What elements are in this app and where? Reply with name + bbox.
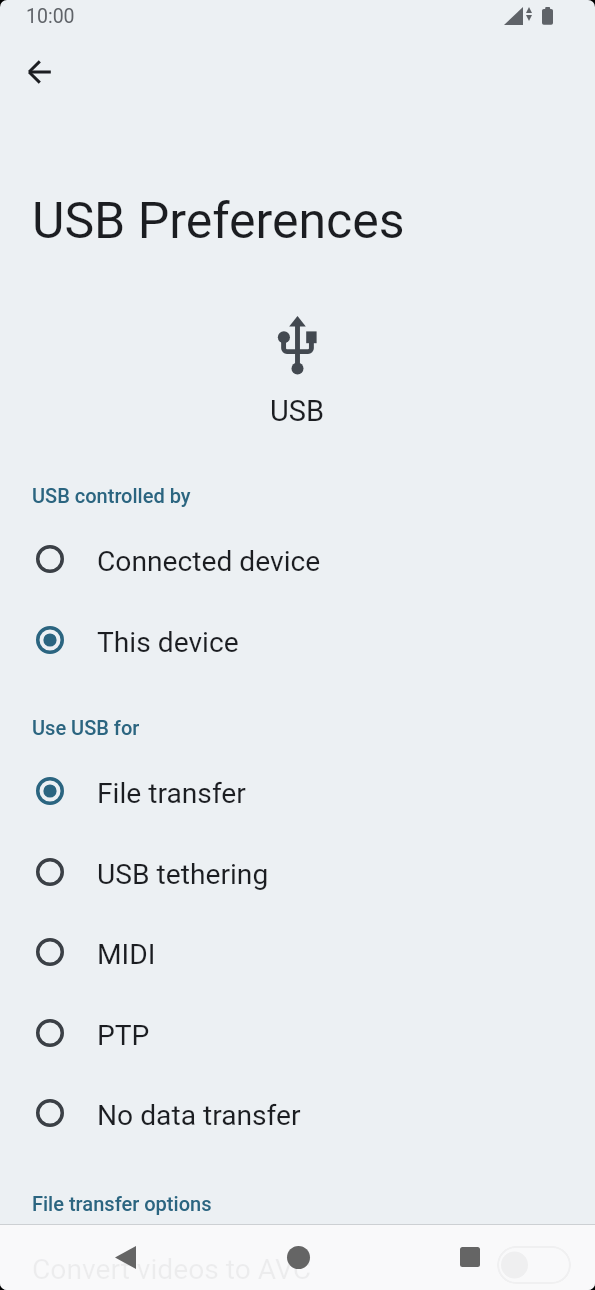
staticText: USB <box>270 394 325 428</box>
staticText: This device <box>97 626 239 659</box>
button[interactable]: Connected device <box>0 519 595 599</box>
button[interactable]: Back <box>11 44 67 100</box>
staticText: USB controlled by <box>32 484 191 507</box>
button[interactable]: PTP <box>0 993 595 1073</box>
button[interactable]: Convert videos to AVC <box>497 1246 571 1284</box>
staticText: USB Preferences <box>32 192 405 251</box>
button[interactable]: This device <box>0 600 595 680</box>
staticText: 10:00 <box>26 5 75 28</box>
button[interactable]: USB tethering <box>0 832 595 912</box>
button[interactable]: Home <box>270 1230 326 1286</box>
staticText: File transfer options <box>32 1192 212 1215</box>
button[interactable]: MIDI <box>0 912 595 992</box>
button[interactable]: Back <box>97 1230 153 1286</box>
button[interactable]: Recent apps <box>442 1230 498 1286</box>
button[interactable]: Convert videos to AVC <box>0 1239 595 1290</box>
staticText: Use USB for <box>32 716 140 739</box>
staticText: File transfer <box>97 777 246 810</box>
staticText: No data transfer <box>97 1099 301 1132</box>
staticText: Convert videos to AVC <box>32 1253 573 1286</box>
staticText: MIDI <box>97 938 156 971</box>
button[interactable]: No data transfer <box>0 1073 595 1153</box>
button[interactable]: File transfer <box>0 751 595 831</box>
staticText: USB tethering <box>97 858 269 891</box>
staticText: PTP <box>97 1019 150 1052</box>
staticText: Connected device <box>97 545 321 578</box>
